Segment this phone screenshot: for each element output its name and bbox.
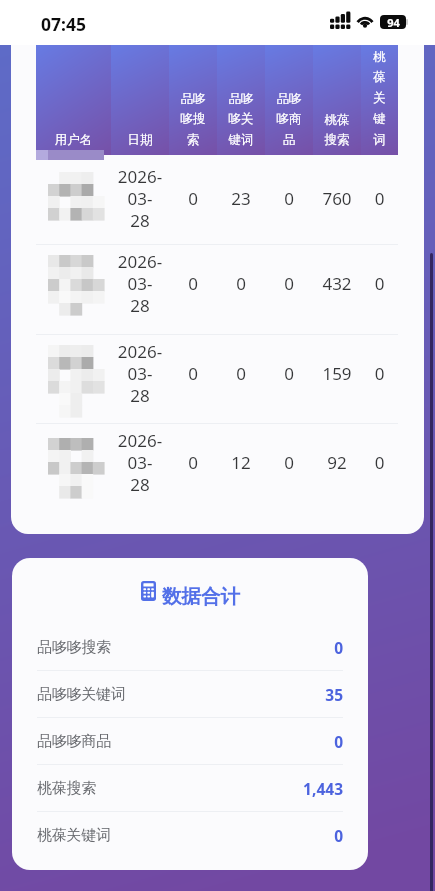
staticText: 0: [334, 637, 343, 658]
staticText: 品哆哆关键词: [223, 91, 259, 148]
staticText: 0: [169, 362, 217, 385]
button[interactable]: 品哆哆商品: [12, 718, 368, 765]
staticText: 23: [217, 187, 265, 210]
staticText: 0: [169, 451, 217, 474]
staticText: 桃葆关键词: [37, 826, 111, 845]
staticText: 92: [313, 451, 361, 474]
staticText: 2026- 03- 28: [111, 250, 169, 317]
staticText: 0: [265, 451, 313, 474]
staticText: 35: [325, 684, 343, 705]
button[interactable]: 品哆哆搜索: [12, 624, 368, 671]
staticText: 0: [361, 451, 398, 474]
staticText: 桃葆关键词: [370, 49, 389, 148]
staticText: 0: [334, 825, 343, 846]
staticText: 品哆哆商品: [271, 91, 307, 148]
button[interactable]: 2026- 03- 28: [36, 424, 398, 512]
other: Wi-Fi: [356, 15, 374, 27]
staticText: 0: [217, 362, 265, 385]
staticText: 日期: [117, 132, 163, 148]
staticText: 1,443: [303, 778, 343, 799]
staticText: 760: [313, 187, 361, 210]
staticText: 品哆哆搜索: [37, 638, 111, 657]
staticText: 0: [265, 272, 313, 295]
staticText: 用户名: [42, 132, 105, 148]
staticText: 品哆哆关键词: [37, 685, 126, 704]
staticText: 94: [387, 15, 400, 29]
staticText: 品哆哆商品: [37, 732, 111, 751]
button[interactable]: 2026- 03- 28: [36, 160, 398, 244]
staticText: 桃葆搜索: [37, 779, 97, 798]
staticText: 0: [169, 187, 217, 210]
staticText: 0: [265, 362, 313, 385]
staticText: 0: [361, 362, 398, 385]
staticText: 2026- 03- 28: [111, 165, 169, 232]
staticText: 数据合计: [162, 584, 240, 609]
staticText: 159: [313, 362, 361, 385]
button[interactable]: 2026- 03- 28: [36, 245, 398, 334]
staticText: 0: [169, 272, 217, 295]
staticText: 12: [217, 451, 265, 474]
staticText: 桃葆搜索: [319, 112, 355, 148]
button[interactable]: 桃葆关键词: [12, 812, 368, 859]
button[interactable]: 桃葆搜索: [12, 765, 368, 812]
other: Calculator: [141, 581, 156, 601]
staticText: 2026- 03- 28: [111, 429, 169, 496]
button[interactable]: 品哆哆关键词: [12, 671, 368, 718]
staticText: 品哆哆搜索: [175, 91, 211, 148]
staticText: 0: [361, 272, 398, 295]
staticText: 07:45: [41, 12, 86, 36]
staticText: 0: [361, 187, 398, 210]
staticText: 0: [217, 272, 265, 295]
staticText: 432: [313, 272, 361, 295]
staticText: 2026- 03- 28: [111, 340, 169, 407]
staticText: 0: [265, 187, 313, 210]
button[interactable]: 2026- 03- 28: [36, 335, 398, 423]
staticText: 0: [334, 731, 343, 752]
